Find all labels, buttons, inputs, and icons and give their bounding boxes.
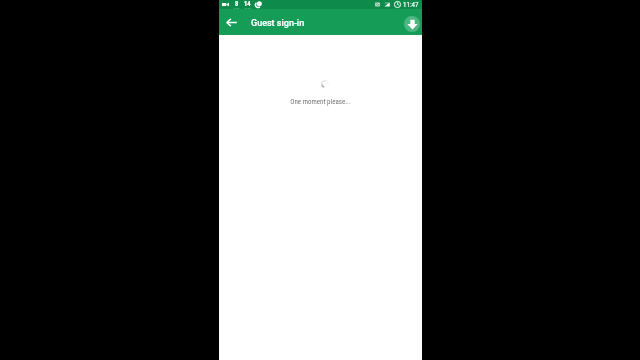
staticText: Guest sign-in — [251, 18, 305, 29]
staticText: 14 — [244, 0, 251, 8]
button[interactable]: Download — [404, 16, 420, 32]
staticText: One moment please... — [290, 98, 351, 106]
staticText: 8 — [235, 0, 239, 8]
button[interactable]: Back — [219, 9, 243, 35]
staticText: 11:47 — [403, 1, 419, 9]
